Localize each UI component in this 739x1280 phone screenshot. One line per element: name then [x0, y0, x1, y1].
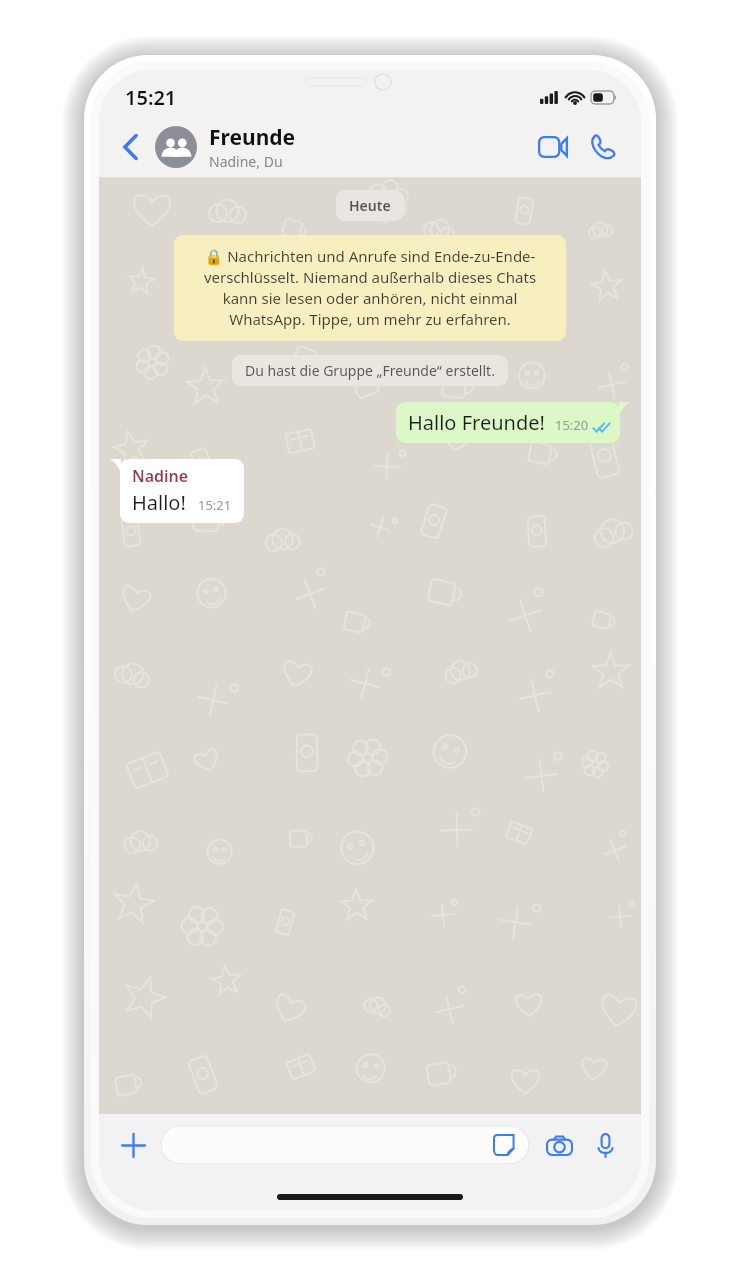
button[interactable]: Sticker — [161, 1126, 529, 1164]
button[interactable]: Freunde — [155, 123, 531, 171]
button[interactable]: Du hast die Gruppe „Freunde“ erstellt. — [232, 355, 508, 386]
staticText: Du hast die Gruppe „Freunde“ erstellt. — [245, 361, 495, 380]
staticText: 🔒 Nachrichten und Anrufe sind Ende-zu-En… — [188, 246, 552, 330]
button[interactable]: Anhang hinzufügen — [113, 1125, 153, 1165]
staticText: 15:21 — [125, 84, 177, 111]
button[interactable]: Hallo Freunde! — [396, 402, 620, 443]
staticText: Hallo Freunde! — [408, 409, 545, 436]
staticText: 15:21 — [198, 496, 232, 514]
staticText: Heute — [349, 196, 391, 215]
button[interactable]: Videoanruf — [531, 125, 575, 169]
staticText: Hallo! — [132, 489, 186, 516]
staticText: Nadine — [132, 465, 189, 487]
button[interactable]: 🔒 Nachrichten und Anrufe sind Ende-zu-En… — [174, 235, 566, 341]
button[interactable]: Anrufen — [581, 125, 625, 169]
staticText: 15:20 — [555, 416, 589, 434]
button[interactable]: Zurück — [111, 127, 151, 167]
staticText: Freunde — [209, 123, 296, 152]
button[interactable]: Sticker — [489, 1130, 519, 1160]
staticText: Nadine, Du — [209, 152, 283, 171]
button[interactable]: Kamera — [539, 1125, 579, 1165]
button[interactable]: Nadine — [120, 459, 244, 523]
button[interactable]: Heute — [336, 190, 404, 221]
button[interactable]: Sprachnachricht — [585, 1125, 625, 1165]
